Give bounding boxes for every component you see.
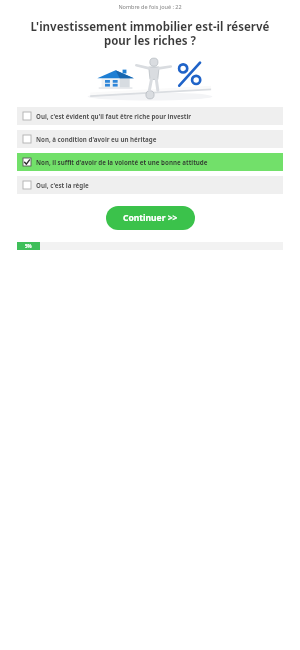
staticText: Non, à condition d'avoir eu un héritage — [36, 135, 157, 143]
staticText: Continuer >> — [123, 212, 178, 224]
staticText: Oui, c'est la règle — [36, 181, 89, 189]
button[interactable]: Oui, c'est la règle — [17, 176, 283, 194]
button[interactable]: Continuer >> — [106, 206, 195, 230]
staticText: Non, il suffit d'avoir de la volonté et … — [36, 158, 208, 166]
staticText: Oui, c'est évident qu'il faut être riche… — [36, 112, 192, 120]
button[interactable]: Oui, c'est évident qu'il faut être riche… — [17, 107, 283, 125]
button[interactable]: Non, à condition d'avoir eu un héritage — [17, 130, 283, 148]
button[interactable]: Non, il suffit d'avoir de la volonté et … — [17, 153, 283, 171]
staticText: 5% — [25, 243, 32, 249]
staticText: L'investissement immobilier est-il réser… — [18, 19, 282, 48]
staticText: Nombre de fois joué : 22 — [0, 3, 300, 10]
